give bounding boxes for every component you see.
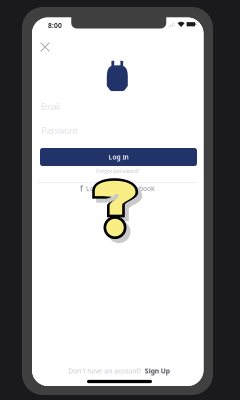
staticText: Password — [41, 126, 77, 136]
staticText: Don't have an account? — [68, 367, 141, 375]
button[interactable]: Forgot password? — [92, 166, 144, 176]
staticText: Log in with Facebook — [86, 184, 155, 193]
staticText: Email — [41, 102, 60, 112]
button[interactable]: Log In — [40, 148, 197, 166]
button[interactable]: Don't have an account? — [68, 365, 170, 376]
staticText: f — [80, 183, 83, 194]
button[interactable]: f — [80, 182, 155, 194]
staticText: Forgot password? — [96, 167, 139, 175]
staticText: Sign Up — [145, 367, 170, 375]
button[interactable]: Close — [35, 37, 55, 57]
staticText: 8:00 — [48, 21, 62, 30]
staticText: Log In — [108, 153, 128, 161]
